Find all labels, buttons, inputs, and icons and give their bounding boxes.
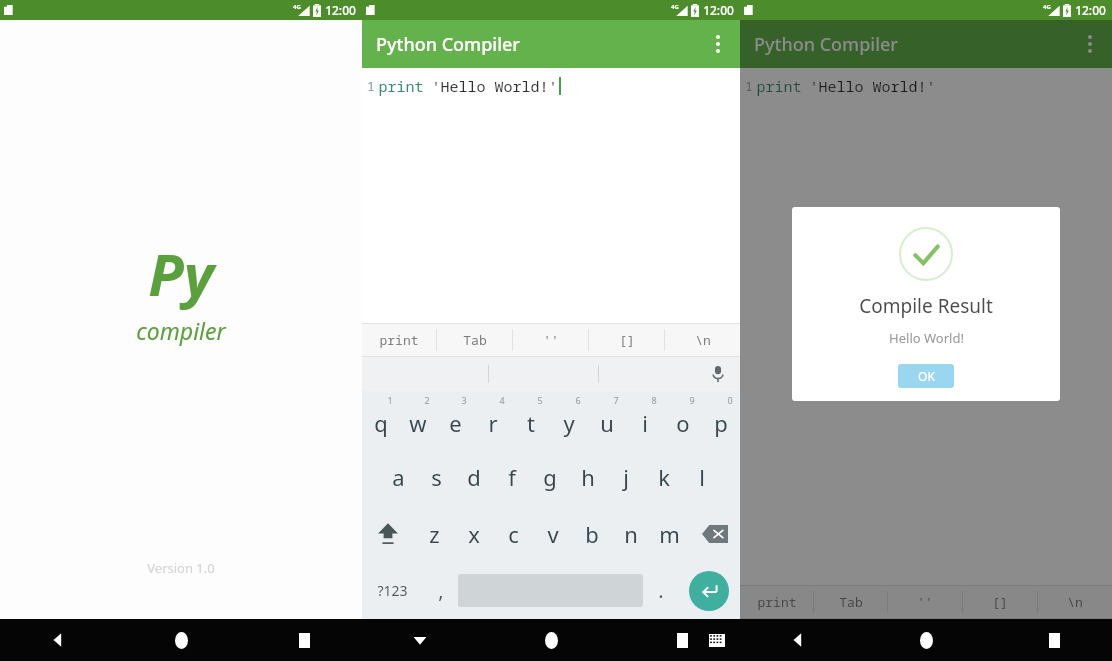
- staticText: w: [409, 408, 427, 438]
- staticText: \n: [1067, 593, 1083, 611]
- button[interactable]: a: [380, 448, 417, 505]
- staticText: n: [624, 519, 638, 549]
- staticText: '': [543, 331, 559, 349]
- button[interactable]: OK: [898, 364, 954, 388]
- staticText: compiler: [136, 315, 226, 346]
- button[interactable]: 2: [399, 391, 436, 448]
- button[interactable]: ?123: [362, 562, 423, 619]
- button[interactable]: 8: [626, 391, 664, 448]
- button[interactable]: More options: [1068, 22, 1112, 66]
- button[interactable]: Voice input: [706, 362, 730, 386]
- staticText: print: [379, 331, 419, 349]
- button[interactable]: Back: [40, 622, 76, 658]
- button[interactable]: 6: [550, 391, 588, 448]
- button[interactable]: .: [643, 562, 678, 619]
- staticText: Py: [148, 234, 214, 313]
- staticText: Tab: [463, 331, 487, 349]
- button[interactable]: n: [611, 505, 650, 562]
- button[interactable]: Recent apps: [664, 622, 700, 658]
- button[interactable]: \n: [1038, 586, 1112, 618]
- staticText: z: [429, 519, 440, 549]
- staticText: 'Hello World!': [809, 76, 936, 96]
- staticText: 4G: [1043, 3, 1051, 11]
- staticText: 6: [575, 394, 581, 406]
- button[interactable]: l: [683, 448, 721, 505]
- button[interactable]: s: [417, 448, 455, 505]
- button[interactable]: ,: [423, 562, 458, 619]
- staticText: Python Compiler: [376, 32, 520, 57]
- staticText: s: [431, 462, 442, 492]
- button[interactable]: Home: [908, 622, 944, 658]
- staticText: 3: [461, 394, 467, 406]
- button[interactable]: Shift: [362, 505, 414, 562]
- staticText: 1: [367, 77, 375, 95]
- button[interactable]: \n: [665, 324, 740, 356]
- button[interactable]: print: [362, 324, 436, 356]
- staticText: p: [714, 408, 728, 438]
- button[interactable]: More options: [696, 22, 740, 66]
- button[interactable]: h: [569, 448, 607, 505]
- staticText: 0: [727, 394, 733, 406]
- staticText: q: [374, 408, 388, 438]
- button[interactable]: Recent apps: [1036, 622, 1072, 658]
- staticText: x: [468, 519, 480, 549]
- staticText: 12:00: [1075, 2, 1106, 18]
- staticText: 4G: [671, 3, 679, 11]
- button[interactable]: Recent apps: [286, 622, 322, 658]
- button[interactable]: '': [513, 324, 588, 356]
- staticText: e: [449, 408, 462, 438]
- button[interactable]: 0: [702, 391, 740, 448]
- button[interactable]: Home: [163, 622, 199, 658]
- button[interactable]: c: [494, 505, 533, 562]
- button[interactable]: Enter: [689, 571, 729, 611]
- staticText: f: [508, 462, 516, 492]
- button[interactable]: []: [963, 586, 1037, 618]
- button[interactable]: Back: [780, 622, 816, 658]
- button[interactable]: g: [531, 448, 569, 505]
- staticText: .: [658, 577, 664, 604]
- staticText: print: [757, 593, 797, 611]
- staticText: 12:00: [703, 2, 734, 18]
- button[interactable]: m: [650, 505, 689, 562]
- button[interactable]: Tab: [437, 324, 512, 356]
- staticText: 1: [745, 77, 753, 95]
- button[interactable]: f: [493, 448, 531, 505]
- staticText: Compile Result: [859, 293, 993, 319]
- button[interactable]: 9: [664, 391, 702, 448]
- staticText: 9: [689, 394, 695, 406]
- staticText: []: [992, 593, 1008, 611]
- staticText: b: [585, 519, 599, 549]
- staticText: c: [508, 519, 519, 549]
- button[interactable]: d: [455, 448, 493, 505]
- button[interactable]: 3: [436, 391, 474, 448]
- staticText: ,: [438, 577, 444, 604]
- button[interactable]: 1: [362, 391, 399, 448]
- staticText: l: [699, 462, 705, 492]
- button[interactable]: []: [589, 324, 664, 356]
- staticText: h: [581, 462, 595, 492]
- button[interactable]: Switch keyboard: [702, 625, 732, 655]
- button[interactable]: 7: [588, 391, 626, 448]
- staticText: []: [619, 331, 635, 349]
- staticText: Python Compiler: [754, 32, 898, 57]
- button[interactable]: 5: [512, 391, 550, 448]
- button[interactable]: Tab: [814, 586, 887, 618]
- staticText: j: [623, 462, 629, 492]
- button[interactable]: b: [572, 505, 611, 562]
- button[interactable]: Back: [402, 622, 438, 658]
- button[interactable]: k: [645, 448, 683, 505]
- staticText: 7: [613, 394, 619, 406]
- staticText: 12:00: [325, 2, 356, 18]
- button[interactable]: Backspace: [689, 505, 740, 562]
- button[interactable]: print: [740, 586, 813, 618]
- staticText: 4: [499, 394, 505, 406]
- button[interactable]: x: [454, 505, 494, 562]
- button[interactable]: j: [607, 448, 645, 505]
- staticText: ?123: [377, 581, 408, 600]
- button[interactable]: Home: [533, 622, 569, 658]
- button[interactable]: z: [414, 505, 454, 562]
- button[interactable]: 4: [474, 391, 512, 448]
- button[interactable]: v: [533, 505, 572, 562]
